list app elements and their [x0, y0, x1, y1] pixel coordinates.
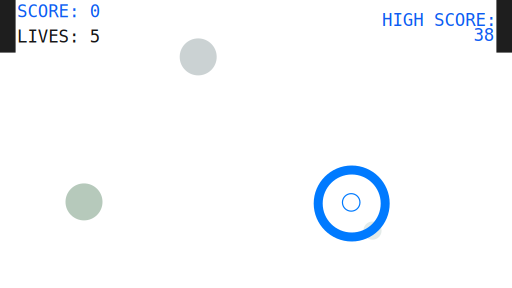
staticText: LIVES: 5	[17, 27, 100, 46]
staticText: 38	[473, 25, 494, 45]
button[interactable]: Play field	[0, 0, 512, 288]
staticText: SCORE: 0	[17, 1, 100, 21]
staticText: HIGH SCORE:	[382, 10, 496, 30]
